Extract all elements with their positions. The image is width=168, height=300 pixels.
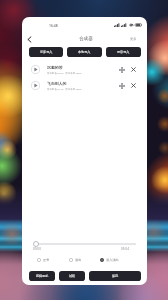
button[interactable]: 试听 — [59, 271, 85, 281]
button[interactable]: Reorder — [117, 81, 126, 90]
staticText: 05:04 — [121, 247, 129, 251]
staticText: 本地导入 — [78, 50, 91, 54]
staticText: 音乐时长04:16 音乐名称.mp3 — [47, 87, 82, 90]
staticText: 16:48 — [49, 23, 58, 28]
button[interactable]: Reorder — [117, 65, 126, 74]
staticText: 淡入淡出 — [106, 258, 119, 262]
button[interactable]: 飞向别人的 — [22, 77, 147, 93]
button[interactable]: 本地导入 — [67, 47, 102, 57]
staticText: 淡出 — [75, 258, 82, 262]
button[interactable]: 正常 — [37, 254, 50, 265]
staticText: 保存 — [112, 274, 119, 278]
staticText: 录音导入 — [117, 50, 130, 54]
button[interactable]: 剪辑歌手 — [29, 271, 55, 281]
staticText: 更多 — [130, 37, 137, 41]
staticText: 剪辑歌手 — [36, 274, 49, 278]
staticText: 试听 — [69, 274, 76, 278]
staticText: 正常 — [43, 258, 50, 262]
button[interactable]: 更多 — [130, 37, 137, 41]
staticText: 乐库导入 — [40, 50, 53, 54]
button[interactable]: Back — [23, 33, 35, 45]
button[interactable]: 保存 — [89, 271, 141, 281]
button[interactable]: Remove — [129, 81, 138, 90]
button[interactable]: 淡入淡出 — [100, 254, 119, 265]
button[interactable]: 淡出 — [69, 254, 82, 265]
button[interactable]: 沉愈的苦 — [22, 61, 147, 77]
button[interactable]: 乐库导入 — [29, 47, 63, 57]
staticText: 沉愈的苦 — [47, 65, 63, 70]
staticText: 00:00 — [33, 247, 41, 251]
button[interactable]: 录音导入 — [106, 47, 141, 57]
staticText: 音乐时长03:44 音乐名称.mp3 — [47, 71, 82, 74]
staticText: 合成器 — [79, 36, 93, 42]
button[interactable]: Remove — [129, 65, 138, 74]
staticText: 飞向别人的 — [47, 81, 67, 86]
